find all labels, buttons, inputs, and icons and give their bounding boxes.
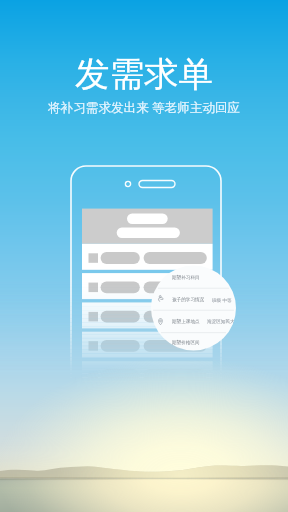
staticText: 班级 中等 xyxy=(212,297,232,303)
staticText: 发需求单 xyxy=(75,53,213,96)
staticText: 海淀区知民大 xyxy=(207,319,235,325)
staticText: 期望上课地点 xyxy=(172,319,200,325)
staticText: 期望补习科目 xyxy=(172,275,200,281)
staticText: 将补习需求发出来 等老师主动回应 xyxy=(48,99,241,116)
other: 学习情况 xyxy=(157,295,164,302)
other: 上课地点 xyxy=(157,318,164,325)
staticText: 期望价格区间 xyxy=(172,340,200,346)
staticText: 孩子的学习情况 xyxy=(172,297,205,303)
